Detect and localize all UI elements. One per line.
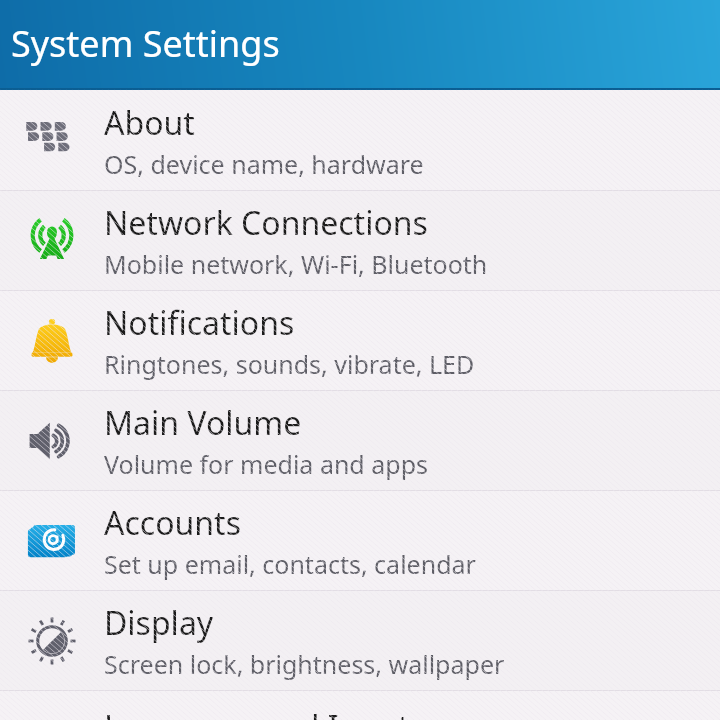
button[interactable]: Language and Input <box>0 691 720 720</box>
staticText: Network Connections <box>104 201 428 245</box>
staticText: Volume for media and apps <box>104 447 428 481</box>
button[interactable]: Accounts <box>0 491 720 591</box>
button[interactable]: Display <box>0 591 720 691</box>
staticText: Accounts <box>104 501 241 545</box>
button[interactable]: Network Connections <box>0 191 720 291</box>
staticText: Mobile network, Wi-Fi, Bluetooth <box>104 247 488 281</box>
staticText: About <box>104 101 195 145</box>
button[interactable]: Notifications <box>0 291 720 391</box>
button[interactable]: Main Volume <box>0 391 720 491</box>
button[interactable]: About <box>0 90 720 191</box>
staticText: Main Volume <box>104 401 302 445</box>
staticText: Language and Input <box>104 705 410 720</box>
staticText: Display <box>104 601 214 645</box>
staticText: Set up email, contacts, calendar <box>104 547 476 581</box>
staticText: Screen lock, brightness, wallpaper <box>104 647 505 681</box>
staticText: Notifications <box>104 301 295 345</box>
staticText: Ringtones, sounds, vibrate, LED <box>104 347 475 381</box>
staticText: System Settings <box>11 19 280 68</box>
staticText: OS, device name, hardware <box>104 147 424 181</box>
